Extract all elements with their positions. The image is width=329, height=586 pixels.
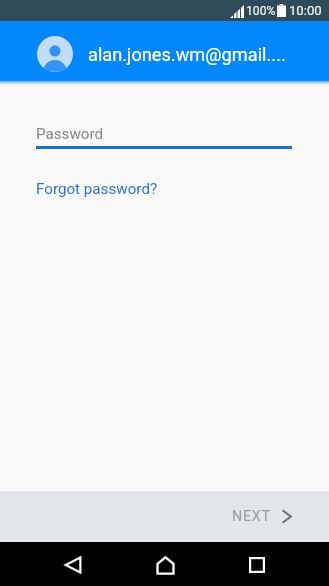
staticText: alan.jones.wm@gmail.... [88,44,286,65]
button[interactable]: Forgot password? [36,180,158,198]
staticText: Forgot password? [36,180,158,198]
staticText: 10:00 [289,3,322,18]
button[interactable]: Home [148,542,182,586]
staticText: NEXT [232,508,271,525]
button[interactable]: Back [56,542,90,586]
staticText: Password [36,125,104,143]
button[interactable]: NEXT [212,498,329,535]
button[interactable]: Account [37,36,73,72]
staticText: 100% [246,4,276,18]
button[interactable]: Recents [240,542,274,586]
